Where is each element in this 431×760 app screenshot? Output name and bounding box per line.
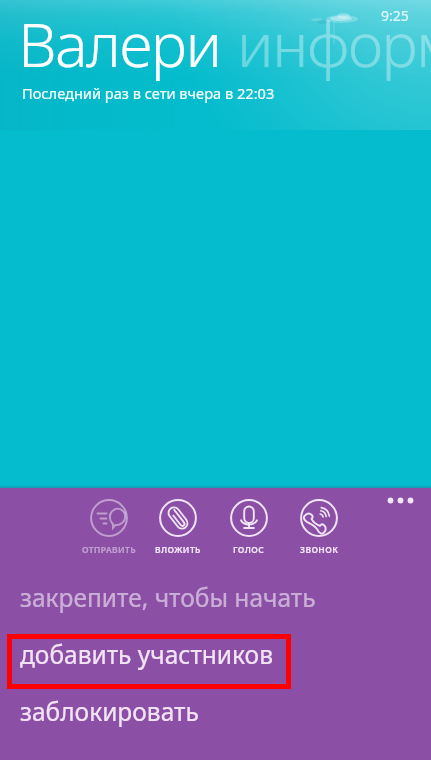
staticText: заблокировать [20,695,199,728]
staticText: ОТПРАВИТЬ [82,544,137,556]
button[interactable]: ГОЛОС [215,499,283,556]
button[interactable]: заблокировать [0,683,431,740]
staticText: Последний раз в сети вчера в 22:03 [22,83,275,103]
staticText: ГОЛОС [233,544,265,556]
button[interactable]: ОТПРАВИТЬ [75,499,143,556]
staticText: добавить участников [20,638,273,671]
staticText: информация [237,2,431,85]
staticText: ВЛОЖИТЬ [155,544,201,556]
button[interactable]: ВЛОЖИТЬ [144,499,212,556]
staticText: Валери [18,2,221,85]
button[interactable]: Дополнительно [377,488,423,514]
staticText: ЗВОНОК [300,544,339,556]
staticText: закрепите, чтобы начать [20,581,316,614]
button[interactable]: добавить участников [0,626,431,683]
staticText: 9:25 [381,6,409,25]
button[interactable]: закрепите, чтобы начать [0,569,431,626]
button[interactable]: ЗВОНОК [285,499,353,556]
